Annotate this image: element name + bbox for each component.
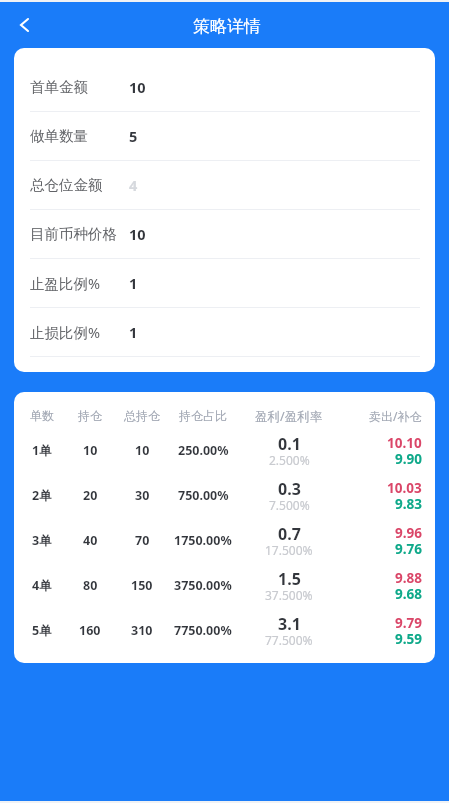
button[interactable]: 1单 [14,428,435,473]
staticText: 1.5 [278,568,301,590]
staticText: 4单 [32,577,52,594]
button[interactable]: 2单 [14,473,435,518]
staticText: 30 [135,487,150,504]
staticText: 160 [79,622,101,639]
button[interactable]: 首单金额 [14,63,435,111]
staticText: 2.500% [269,452,310,468]
staticText: 10.03 [387,479,422,497]
staticText: 17.500% [265,542,313,558]
staticText: 首单金额 [30,78,129,96]
staticText: 做单数量 [30,127,129,145]
staticText: 总仓位金额 [30,176,129,194]
staticText: 750.00% [178,487,229,504]
button[interactable]: 止盈比例% [14,259,435,307]
staticText: 80 [83,577,98,594]
staticText: 7.500% [269,497,310,513]
staticText: 单数 [30,408,54,423]
staticText: 77.500% [265,632,313,648]
staticText: 9.88 [395,569,422,587]
staticText: 0.7 [278,523,301,545]
staticText: 9.76 [395,540,422,558]
button[interactable]: 4单 [14,563,435,608]
staticText: 10 [83,442,98,459]
staticText: 1 [129,273,138,293]
staticText: 9.68 [395,585,422,603]
staticText: 250.00% [178,442,229,459]
staticText: 策略详情 [193,16,261,37]
staticText: 5单 [32,622,52,639]
staticText: 9.59 [395,630,422,648]
staticText: 9.90 [395,450,422,468]
button[interactable]: 目前币种价格 [14,210,435,258]
button[interactable]: 止损比例% [14,308,435,356]
staticText: 20 [83,487,98,504]
staticText: 10 [135,442,150,459]
staticText: 止损比例% [30,322,129,342]
staticText: 总持仓 [124,408,160,423]
staticText: 9.79 [395,614,422,632]
staticText: 3750.00% [174,577,232,594]
staticText: 9.83 [395,495,422,513]
staticText: 4 [129,175,138,195]
staticText: 0.3 [278,478,301,500]
staticText: 0.1 [278,433,301,455]
staticText: 卖出/补仓 [369,408,422,424]
staticText: 3单 [32,532,52,549]
button[interactable]: 5单 [14,608,435,653]
staticText: 2单 [32,487,52,504]
staticText: 40 [83,532,98,549]
staticText: 9.96 [395,524,422,542]
staticText: 310 [131,622,153,639]
staticText: 5 [129,126,138,146]
staticText: 10 [129,224,146,244]
staticText: 3.1 [278,613,301,635]
button[interactable]: 做单数量 [14,112,435,160]
staticText: 150 [131,577,153,594]
staticText: 目前币种价格 [30,225,129,243]
staticText: 1单 [32,442,52,459]
button[interactable]: Back [0,2,46,48]
staticText: 持仓占比 [179,408,227,423]
staticText: 7750.00% [174,622,232,639]
staticText: 70 [135,532,150,549]
staticText: 持仓 [78,408,102,423]
staticText: 止盈比例% [30,273,129,293]
staticText: 37.500% [265,587,313,603]
button[interactable]: 总仓位金额 [14,161,435,209]
staticText: 1 [129,322,138,342]
staticText: 1750.00% [174,532,232,549]
staticText: 10.10 [387,434,422,452]
button[interactable]: 3单 [14,518,435,563]
staticText: 10 [129,77,146,97]
staticText: 盈利/盈利率 [255,408,323,425]
